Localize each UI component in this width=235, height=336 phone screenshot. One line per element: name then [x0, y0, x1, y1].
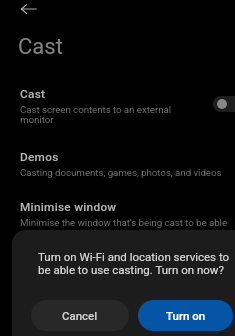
button[interactable]: Minimise window [0, 200, 235, 228]
button[interactable]: Cancel [31, 300, 129, 331]
staticText: Cancel [62, 309, 98, 322]
staticText: Turn on Wi-Fi and location services to b… [38, 250, 232, 276]
button[interactable]: Demos [0, 150, 235, 178]
button[interactable]: Cast toggle [213, 96, 235, 112]
staticText: Demos [20, 150, 59, 164]
staticText: Minimise the window that's being cast to… [20, 217, 235, 228]
staticText: Turn on [166, 309, 206, 322]
staticText: Cast screen contents to an external moni… [20, 104, 190, 125]
staticText: Cast [20, 87, 46, 101]
button[interactable]: Turn on [138, 300, 233, 331]
staticText: Minimise window [20, 200, 117, 214]
button[interactable]: Back [8, 0, 34, 21]
button[interactable]: Cast [0, 87, 235, 125]
staticText: Casting documents, games, photos, and vi… [20, 167, 222, 178]
staticText: Cast [18, 34, 63, 60]
